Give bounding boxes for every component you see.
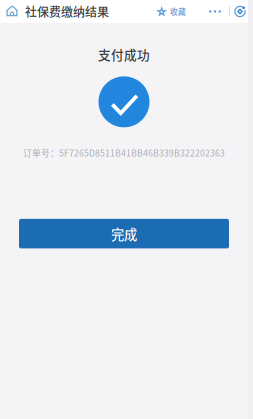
button[interactable]: 收藏 xyxy=(154,0,189,23)
staticText: 完成 xyxy=(111,224,137,243)
staticText: 订单号：5F7265D8511B41BB46B339B322202363 xyxy=(23,146,225,159)
button[interactable]: Home xyxy=(0,0,25,23)
staticText: 收藏 xyxy=(170,6,186,17)
staticText: 支付成功 xyxy=(98,45,150,63)
staticText: 社保费缴纳结果 xyxy=(25,3,109,20)
button[interactable]: Scan xyxy=(233,0,247,23)
button[interactable]: 完成 xyxy=(19,219,229,248)
button[interactable]: More options xyxy=(208,0,222,23)
